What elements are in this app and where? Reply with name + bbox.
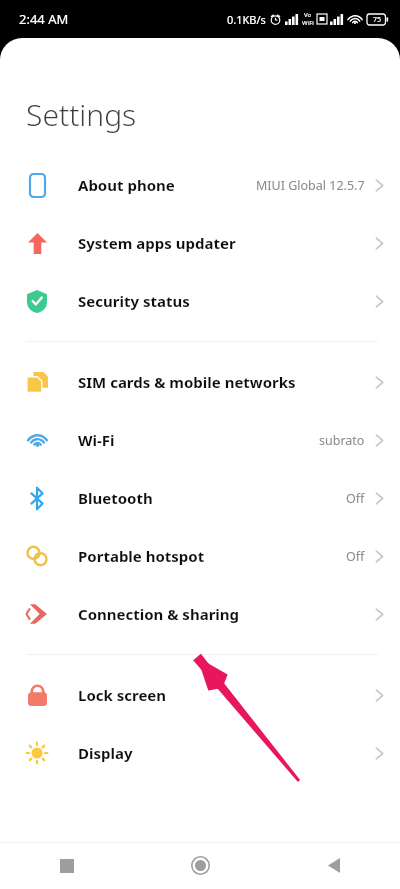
staticText: Off xyxy=(346,548,365,565)
staticText: 75 xyxy=(373,15,382,25)
staticText: Display xyxy=(78,743,133,763)
button[interactable]: Lock screen xyxy=(0,666,400,724)
staticText: WiFi xyxy=(302,19,314,27)
button[interactable]: System apps updater xyxy=(0,214,400,272)
button[interactable]: Back xyxy=(267,842,400,889)
button[interactable]: SIM cards & mobile networks xyxy=(0,353,400,411)
staticText: MIUI Global 12.5.7 xyxy=(256,177,365,194)
staticText: SIM cards & mobile networks xyxy=(78,372,296,392)
staticText: Settings xyxy=(26,94,137,135)
button[interactable]: Portable hotspot xyxy=(0,527,400,585)
staticText: Security status xyxy=(78,291,190,311)
button[interactable]: Home xyxy=(134,842,267,889)
staticText: 2:44 AM xyxy=(19,10,69,28)
staticText: 0.1KB/s xyxy=(227,12,266,27)
button[interactable]: Display xyxy=(0,724,400,782)
button[interactable]: Recent apps xyxy=(0,842,134,889)
staticText: Vo xyxy=(304,11,312,19)
button[interactable]: Wi-Fi xyxy=(0,411,400,469)
staticText: subrato xyxy=(319,432,365,449)
staticText: About phone xyxy=(78,175,175,195)
button[interactable]: About phone xyxy=(0,156,400,214)
button[interactable]: Bluetooth xyxy=(0,469,400,527)
staticText: Bluetooth xyxy=(78,488,153,508)
staticText: System apps updater xyxy=(78,233,236,253)
staticText: Off xyxy=(346,490,365,507)
staticText: Connection & sharing xyxy=(78,604,240,624)
staticText: Wi-Fi xyxy=(78,430,115,450)
staticText: Portable hotspot xyxy=(78,546,205,566)
button[interactable]: Connection & sharing xyxy=(0,585,400,643)
button[interactable]: Security status xyxy=(0,272,400,330)
staticText: Lock screen xyxy=(78,685,167,705)
